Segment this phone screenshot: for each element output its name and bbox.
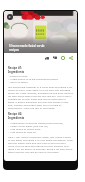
button[interactable]: Like bbox=[44, 55, 50, 61]
staticText: 5 homemade facial scrub recipes bbox=[9, 44, 45, 51]
button[interactable]: Dislike bbox=[52, 55, 58, 61]
button[interactable]: Save bbox=[60, 55, 66, 61]
staticText: Recipe #2: bbox=[8, 112, 23, 116]
staticText: - 4 tbsp of honey - 1 table spoon of dri… bbox=[8, 74, 59, 83]
button[interactable]: Back bbox=[7, 14, 13, 20]
staticText: Ingredients bbox=[8, 116, 25, 120]
button[interactable]: Share bbox=[68, 55, 74, 61]
staticText: Recipe #1: bbox=[8, 66, 23, 70]
staticText: Ingredients bbox=[8, 70, 25, 74]
staticText: - 1 tablespoon of ground coffee (finely … bbox=[8, 121, 63, 133]
staticText: Mix everything together in a small bowl … bbox=[8, 85, 73, 109]
staticText: Take 1 tab. spoon of ground coffee, mix … bbox=[8, 135, 73, 153]
